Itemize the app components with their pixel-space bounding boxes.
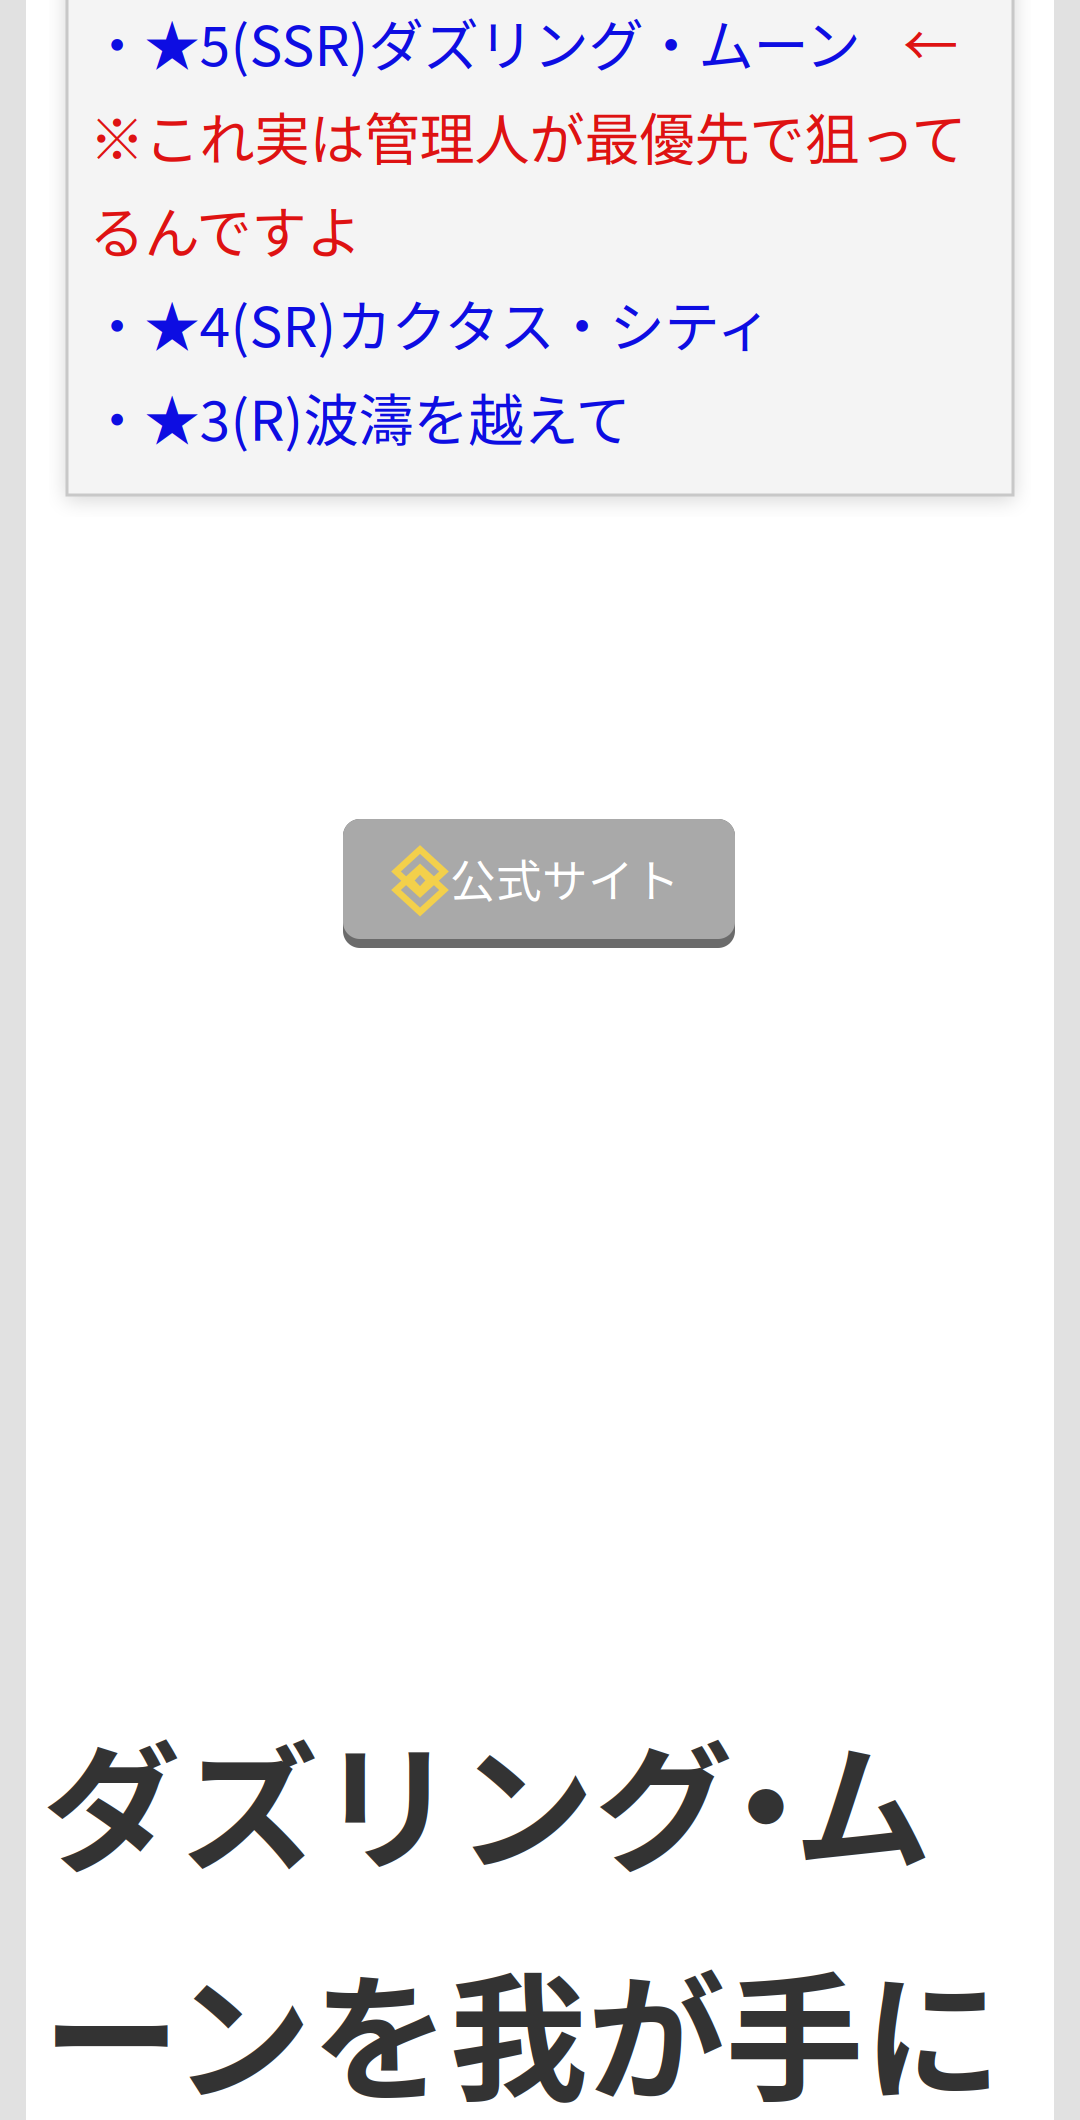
staticText: ・★4(SR)カクタス・シティ [89,283,771,363]
staticText: ・ [697,1699,835,1899]
staticText: ・★3(R)波濤を越えて [89,377,630,457]
button[interactable]: 公式サイト [343,819,735,948]
staticText: ダズリング [42,1699,732,1899]
staticText: ← [903,2,958,82]
staticText: ム [794,1699,932,1899]
staticText: ※これ実は管理人が最優先で狙って [89,96,966,175]
staticText: るんですよ [89,189,361,269]
staticText: ーンを我が手に [42,1929,1001,2120]
staticText: ・★5(SSR)ダズリング・ムーン [89,2,860,82]
staticText: 公式サイト [450,845,680,911]
